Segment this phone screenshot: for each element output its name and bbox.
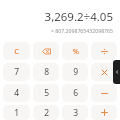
staticText: 8 [44,66,49,78]
button[interactable]: 1 [3,105,30,120]
button[interactable]: 4 [3,84,30,102]
button[interactable]: 6 [62,84,88,102]
button[interactable]: Plus [91,105,117,120]
button[interactable]: Percent [62,42,88,60]
staticText: % [72,46,79,56]
button[interactable]: Minus [91,84,117,102]
button[interactable]: 2 [33,105,59,120]
staticText: = 807.2098765432098765 [50,27,113,34]
staticText: 1 [14,107,19,119]
staticText: 5 [44,87,49,99]
button[interactable]: Clear [3,42,30,60]
button[interactable]: 8 [33,63,59,81]
staticText: 7 [14,66,19,78]
staticText: 3 [73,107,78,119]
staticText: C [14,46,19,56]
button[interactable]: 7 [3,63,30,81]
button[interactable]: 9 [62,63,88,81]
staticText: 6 [73,87,78,99]
staticText: 9 [73,66,78,78]
button[interactable]: Backspace [33,42,59,60]
staticText: 3,269.2÷4.05 [44,9,113,25]
button[interactable]: 3 [62,105,88,120]
button[interactable]: 5 [33,84,59,102]
staticText: 2 [44,107,49,119]
button[interactable]: Divide [91,42,117,60]
staticText: 4 [14,87,19,99]
button[interactable]: Multiply [91,63,117,81]
